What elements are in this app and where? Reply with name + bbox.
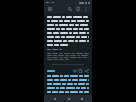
button[interactable] [47, 75, 89, 95]
button[interactable]: Swap languages [72, 68, 77, 73]
button[interactable]: Menu [47, 6, 53, 12]
button[interactable]: Swap languages [47, 68, 89, 73]
button[interactable]: Home [66, 96, 71, 101]
button[interactable]: Bookmark [75, 6, 81, 12]
button[interactable] [47, 16, 89, 46]
button[interactable]: Search [67, 6, 73, 12]
button[interactable] [47, 49, 89, 60]
button[interactable]: Back [52, 96, 57, 101]
button[interactable]: Recent apps [79, 96, 84, 101]
button[interactable]: More options [83, 6, 89, 12]
button[interactable]: Copy [78, 68, 83, 73]
button[interactable]: Share [84, 68, 89, 73]
